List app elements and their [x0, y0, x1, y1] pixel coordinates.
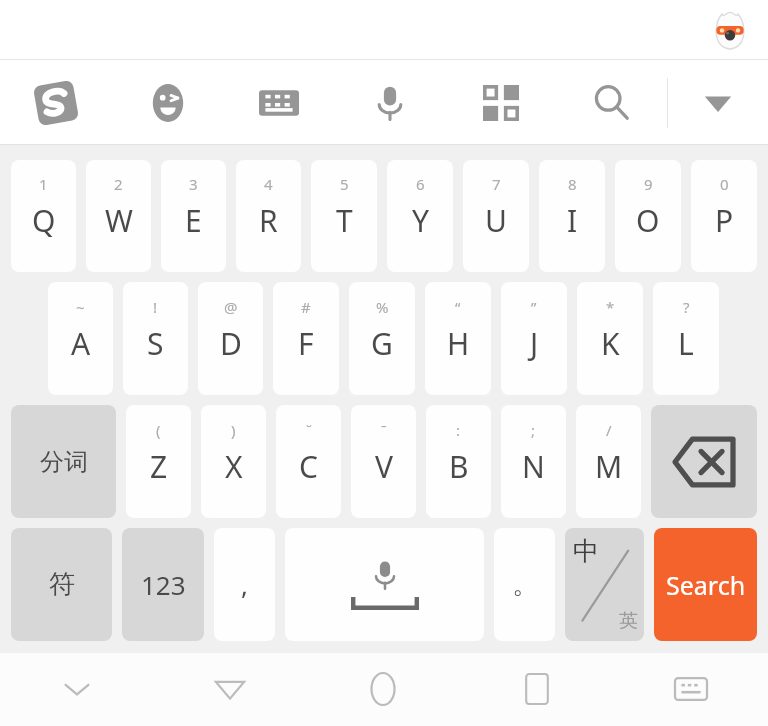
staticText: 2 — [114, 174, 123, 194]
staticText: ! — [153, 297, 158, 317]
button[interactable]: Keyboard layout — [223, 60, 334, 145]
staticText: , — [241, 567, 248, 602]
button[interactable]: ( — [126, 405, 191, 518]
staticText: Q — [32, 200, 56, 241]
staticText: T — [336, 200, 353, 241]
button[interactable]: Mascot — [710, 10, 750, 50]
button[interactable]: Switch input method — [614, 652, 768, 726]
button[interactable]: 7 — [463, 160, 529, 272]
button[interactable]: 8 — [539, 160, 605, 272]
button[interactable]: ˘ — [276, 405, 341, 518]
staticText: P — [715, 200, 734, 241]
button[interactable]: Hide keyboard — [0, 652, 153, 726]
staticText: F — [298, 323, 314, 364]
staticText: ( — [156, 420, 161, 440]
staticText: U — [485, 200, 507, 241]
staticText: 分词 — [40, 447, 88, 477]
staticText: S — [147, 323, 164, 364]
button[interactable]: % — [349, 282, 415, 395]
button[interactable]: Voice input — [334, 60, 445, 145]
button[interactable]: 0 — [691, 160, 757, 272]
button[interactable]: 2 — [86, 160, 151, 272]
button[interactable]: # — [273, 282, 339, 395]
staticText: ; — [531, 420, 536, 440]
staticText: O — [636, 200, 660, 241]
staticText: K — [601, 323, 620, 364]
staticText: Search — [666, 568, 746, 602]
staticText: A — [71, 323, 91, 364]
staticText: L — [678, 323, 694, 364]
button[interactable]: , — [214, 528, 275, 641]
staticText: Z — [150, 446, 168, 487]
staticText: @ — [224, 297, 238, 317]
button[interactable]: Space — [285, 528, 484, 641]
staticText: / — [606, 420, 612, 440]
button[interactable]: 3 — [161, 160, 226, 272]
staticText: ) — [231, 420, 236, 440]
staticText: 6 — [416, 174, 425, 194]
staticText: I — [567, 200, 578, 241]
button[interactable]: 9 — [615, 160, 681, 272]
staticText: 。 — [512, 568, 538, 601]
staticText: 中 — [573, 535, 599, 568]
staticText: 1 — [39, 174, 48, 194]
button[interactable]: Home — [306, 652, 460, 726]
staticText: M — [595, 446, 623, 487]
staticText: 英 — [619, 609, 638, 633]
button[interactable]: 符 — [11, 528, 112, 641]
staticText: % — [376, 297, 389, 317]
staticText: B — [449, 446, 469, 487]
button[interactable]: Search — [556, 60, 667, 145]
button[interactable]: ~ — [48, 282, 113, 395]
button[interactable]: Backspace — [651, 405, 757, 518]
staticText: J — [530, 323, 539, 364]
staticText: 7 — [492, 174, 501, 194]
button[interactable]: Back — [153, 652, 306, 726]
button[interactable]: Collapse — [668, 60, 768, 145]
button[interactable]: More tools — [445, 60, 556, 145]
button[interactable]: ! — [123, 282, 188, 395]
staticText: “ — [455, 297, 461, 317]
button[interactable]: Recents — [460, 652, 614, 726]
staticText: W — [105, 200, 133, 241]
button[interactable]: 123 — [122, 528, 204, 641]
staticText: V — [375, 446, 393, 487]
button[interactable]: Emoji — [112, 60, 223, 145]
staticText: 4 — [264, 174, 273, 194]
staticText: H — [447, 323, 470, 364]
staticText: ˘ — [306, 420, 312, 440]
button[interactable]: 1 — [11, 160, 76, 272]
button[interactable]: / — [576, 405, 641, 518]
button[interactable]: ) — [201, 405, 266, 518]
button[interactable]: “ — [425, 282, 491, 395]
button[interactable]: Chinese English toggle — [565, 528, 644, 641]
button[interactable]: ” — [501, 282, 567, 395]
staticText: D — [220, 323, 242, 364]
staticText: : — [456, 420, 461, 440]
button[interactable]: 5 — [311, 160, 377, 272]
button[interactable]: 4 — [236, 160, 301, 272]
staticText: 符 — [49, 568, 75, 601]
button[interactable]: ; — [501, 405, 566, 518]
staticText: R — [259, 200, 278, 241]
staticText: 123 — [141, 567, 186, 602]
button[interactable]: @ — [198, 282, 263, 395]
button[interactable]: : — [426, 405, 491, 518]
staticText: ~ — [76, 297, 85, 317]
staticText: C — [299, 446, 318, 487]
staticText: G — [371, 323, 393, 364]
staticText: ? — [683, 297, 690, 317]
button[interactable]: Sogou — [0, 60, 112, 145]
button[interactable]: ˉ — [351, 405, 416, 518]
button[interactable]: 。 — [494, 528, 555, 641]
staticText: ” — [531, 297, 537, 317]
button[interactable]: 6 — [387, 160, 453, 272]
button[interactable]: ? — [653, 282, 719, 395]
staticText: 3 — [189, 174, 198, 194]
button[interactable]: 分词 — [11, 405, 116, 518]
staticText: 5 — [340, 174, 349, 194]
button[interactable]: * — [577, 282, 643, 395]
button[interactable]: Search — [654, 528, 757, 641]
staticText: 0 — [720, 174, 729, 194]
staticText: # — [301, 297, 311, 317]
